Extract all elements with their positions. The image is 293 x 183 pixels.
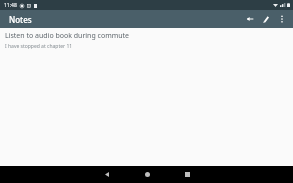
staticText: I have stopped at chapter 11: [5, 43, 73, 50]
button[interactable]: More options: [274, 11, 290, 27]
button[interactable]: Undo: [242, 11, 258, 27]
button[interactable]: Edit: [258, 11, 274, 27]
staticText: 11:48: [4, 2, 17, 9]
staticText: Listen to audio book during commute: [5, 31, 130, 41]
button[interactable]: Recent apps: [167, 166, 207, 183]
button[interactable]: Listen to audio book during commute: [0, 28, 293, 166]
staticText: Notes: [9, 14, 32, 25]
button[interactable]: Back: [87, 166, 127, 183]
button[interactable]: Home: [127, 166, 167, 183]
